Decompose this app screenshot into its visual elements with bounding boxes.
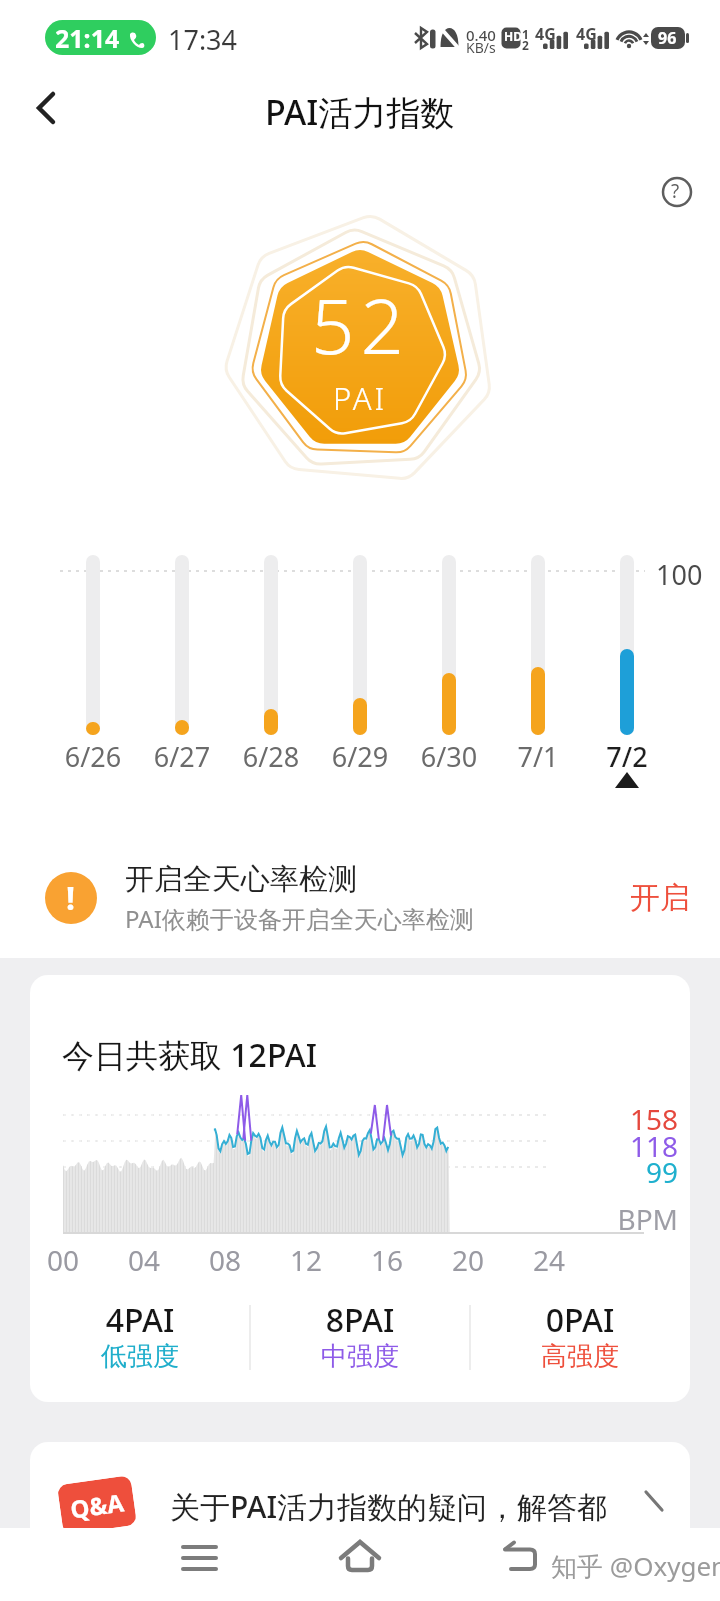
staticText: 中强度	[260, 1340, 460, 1373]
staticText: 关于PAI活力指数的疑问，解答都	[170, 1486, 608, 1527]
staticText: 118	[602, 1127, 678, 1165]
button[interactable]: 开启	[630, 879, 690, 917]
staticText: 1	[522, 26, 529, 42]
staticText: 99	[602, 1153, 678, 1191]
staticText: 08	[195, 1241, 255, 1279]
staticText: 6/29	[316, 738, 404, 775]
staticText: Q&A	[68, 1485, 126, 1526]
staticText: HD	[504, 28, 522, 44]
staticText: 17:34	[168, 21, 238, 58]
button[interactable]	[26, 86, 70, 130]
staticText: !	[66, 876, 76, 920]
staticText: 6/30	[405, 738, 493, 775]
button[interactable]	[176, 1540, 224, 1588]
staticText: 4PAI	[40, 1298, 240, 1342]
staticText: 高强度	[480, 1340, 680, 1373]
staticText: 4G	[535, 23, 556, 45]
staticText: KB/s	[466, 38, 496, 57]
staticText: 0PAI	[480, 1298, 680, 1342]
staticText: 8PAI	[260, 1298, 460, 1342]
staticText: 16	[357, 1241, 417, 1279]
staticText: 04	[114, 1241, 174, 1279]
staticText: 24	[519, 1241, 579, 1279]
button[interactable]: !	[0, 845, 720, 950]
staticText: 7/1	[494, 738, 582, 775]
staticText: 4G	[576, 23, 597, 45]
staticText: PAI活力指数	[265, 89, 455, 135]
staticText: 今日共获取 12PAI	[62, 1033, 318, 1077]
staticText: 开启全天心率检测	[125, 861, 357, 898]
staticText: 100	[656, 556, 703, 593]
staticText: 6/28	[227, 738, 315, 775]
staticText: 52	[311, 273, 410, 377]
staticText: 158	[602, 1100, 678, 1138]
staticText: 7/2	[583, 738, 671, 775]
staticText: 96	[658, 27, 677, 49]
staticText: 00	[33, 1241, 93, 1279]
staticText: 2	[522, 37, 529, 53]
button[interactable]	[496, 1540, 544, 1588]
staticText: 低强度	[40, 1340, 240, 1373]
button[interactable]: ?	[660, 175, 694, 209]
staticText: 6/26	[49, 738, 137, 775]
staticText: 20	[438, 1241, 498, 1279]
staticText: ?	[671, 178, 680, 204]
staticText: 6/27	[138, 738, 226, 775]
button[interactable]	[336, 1540, 384, 1588]
staticText: 21:14	[55, 21, 120, 55]
staticText: 12	[276, 1241, 336, 1279]
staticText: PAI依赖于设备开启全天心率检测	[125, 902, 474, 935]
staticText: 知乎 @Oxygen	[551, 1548, 720, 1584]
staticText: PAI	[333, 377, 388, 419]
button[interactable]: Q&A	[30, 1442, 690, 1572]
staticText: BPM	[582, 1200, 678, 1238]
staticText: 0.40	[466, 25, 496, 45]
